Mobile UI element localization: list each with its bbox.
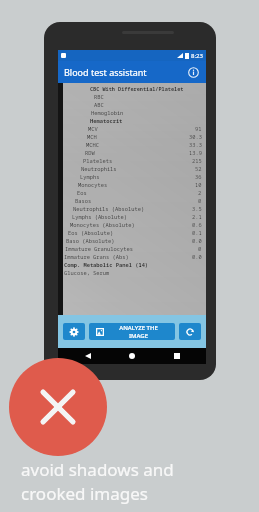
staticText: Eos (77, 189, 87, 196)
staticText: Immature Grans (Abs) (64, 253, 129, 260)
button[interactable]: Settings (63, 323, 85, 340)
button[interactable]: Recents (162, 348, 192, 364)
button[interactable]: Refresh (179, 323, 201, 340)
staticText: 30.3 (189, 133, 202, 140)
staticText: Monocytes (78, 181, 108, 188)
staticText: Neutrophils (Absolute) (73, 205, 145, 212)
button[interactable]: Home (117, 348, 147, 364)
staticText: crooked images (21, 482, 148, 505)
staticText: 33.3 (189, 141, 202, 148)
staticText: RBC (94, 93, 104, 100)
staticText: 2 (198, 189, 202, 196)
button[interactable]: Info (187, 66, 200, 79)
staticText: 36 (195, 173, 202, 180)
staticText: 0 (198, 245, 202, 252)
staticText: 10 (195, 181, 202, 188)
staticText: Immature Granulocytes (65, 245, 133, 252)
staticText: CBC With Differential/Platelet (90, 85, 184, 92)
staticText: 13.9 (189, 149, 202, 156)
staticText: Platelets (83, 157, 113, 164)
staticText: 0.0 (192, 253, 202, 260)
staticText: Glucose, Serum (64, 269, 110, 276)
staticText: Blood test assistant (64, 66, 147, 78)
staticText: Lymphs (80, 173, 100, 180)
staticText: 52 (195, 165, 202, 172)
staticText: Baso (Absolute) (66, 237, 115, 244)
staticText: 215 (192, 157, 202, 164)
staticText: Hemoglobin (91, 109, 124, 116)
staticText: ANALYZE THE IMAGE (109, 324, 168, 340)
staticText: Monocytes (Absolute) (70, 221, 135, 228)
staticText: 0.1 (192, 229, 202, 236)
staticText: avoid shadows and (21, 458, 174, 481)
staticText: RDW (85, 149, 95, 156)
staticText: Lymphs (Absolute) (72, 213, 127, 220)
staticText: 2.1 (192, 213, 202, 220)
staticText: MCH (87, 133, 97, 140)
staticText: Eos (Absolute) (68, 229, 114, 236)
staticText: Hematocrit (90, 117, 123, 124)
staticText: 3.5 (192, 205, 202, 212)
button[interactable]: Back (73, 348, 103, 364)
other: Rejected example (9, 358, 107, 456)
button[interactable]: ANALYZE THE IMAGE (89, 323, 175, 340)
staticText: ABC (94, 101, 104, 108)
staticText: MCHC (86, 141, 99, 148)
staticText: 0.0 (192, 237, 202, 244)
staticText: 8:23 (191, 52, 203, 60)
staticText: 0 (198, 197, 202, 204)
staticText: Basos (75, 197, 92, 204)
staticText: 91 (195, 125, 202, 132)
staticText: MCV (88, 125, 98, 132)
staticText: 0.6 (192, 221, 202, 228)
staticText: Comp. Metabolic Panel (14) (64, 261, 149, 268)
staticText: Neutrophils (81, 165, 117, 172)
